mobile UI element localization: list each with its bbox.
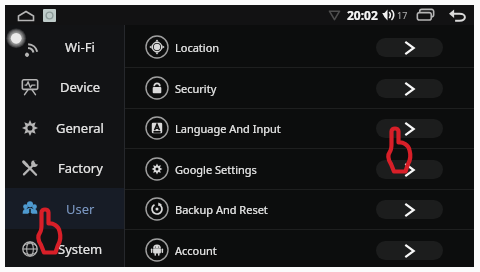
- staticText: 17: [397, 9, 408, 21]
- button[interactable]: Screenshot: [43, 9, 56, 22]
- staticText: Google Settings: [175, 162, 257, 177]
- button[interactable]: Recent apps: [417, 9, 434, 21]
- staticText: Security: [175, 81, 217, 96]
- staticText: General: [56, 119, 104, 137]
- button[interactable]: Open Security: [376, 79, 443, 98]
- button[interactable]: Factory: [5, 147, 125, 188]
- button[interactable]: Open Language And Input: [376, 119, 443, 138]
- button[interactable]: Wi-Fi: [5, 26, 125, 67]
- button[interactable]: Language And Input: [125, 108, 474, 148]
- button[interactable]: User: [5, 188, 125, 229]
- button[interactable]: Account: [125, 230, 474, 270]
- button[interactable]: Backup And Reset: [125, 189, 474, 229]
- button[interactable]: Back: [449, 9, 466, 21]
- staticText: Device: [60, 78, 101, 96]
- button[interactable]: Open Backup And Reset: [376, 200, 443, 219]
- button[interactable]: General: [5, 107, 125, 148]
- staticText: System: [58, 240, 103, 258]
- button[interactable]: Open Google Settings: [376, 160, 443, 179]
- button[interactable]: Open Account: [376, 241, 443, 260]
- staticText: Account: [175, 243, 217, 258]
- staticText: 20:02: [347, 7, 378, 23]
- button[interactable]: Home: [18, 11, 34, 21]
- button[interactable]: Security: [125, 68, 474, 108]
- button[interactable]: Open Location: [376, 38, 443, 57]
- button[interactable]: System: [5, 228, 125, 269]
- staticText: Wi-Fi: [65, 38, 95, 56]
- button[interactable]: Device: [5, 66, 125, 107]
- staticText: Language And Input: [175, 121, 281, 136]
- staticText: Location: [175, 40, 220, 55]
- staticText: Backup And Reset: [175, 202, 268, 217]
- button[interactable]: Location: [125, 27, 474, 67]
- staticText: User: [66, 200, 95, 218]
- button[interactable]: Google Settings: [125, 149, 474, 189]
- staticText: Factory: [58, 159, 103, 177]
